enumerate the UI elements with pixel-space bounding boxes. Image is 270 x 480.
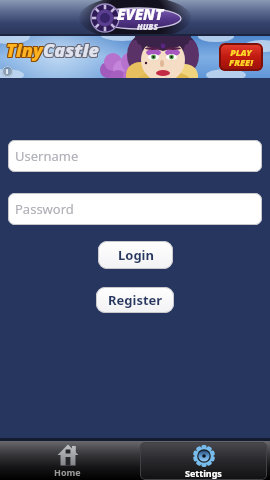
- button[interactable]: Login: [98, 241, 173, 269]
- staticText: Register: [108, 291, 163, 309]
- staticText: Tiny: [7, 38, 44, 63]
- staticText: Settings: [185, 467, 222, 479]
- staticText: Castle: [43, 39, 99, 64]
- staticText: Tiny: [5, 39, 42, 64]
- staticText: EVENT: [117, 4, 164, 24]
- staticText: Tiny: [6, 39, 43, 64]
- staticText: Castle: [44, 38, 100, 63]
- button[interactable]: Username: [8, 140, 262, 172]
- button[interactable]: Home: [0, 441, 135, 480]
- button[interactable]: Password: [8, 193, 262, 225]
- staticText: Castle: [42, 37, 98, 62]
- staticText: Username: [15, 147, 79, 165]
- staticText: Tiny: [5, 37, 42, 62]
- staticText: Password: [15, 200, 74, 218]
- staticText: Tiny: [7, 37, 44, 62]
- button[interactable]: Settings: [140, 442, 267, 480]
- staticText: Login: [118, 246, 154, 264]
- button[interactable]: Register: [96, 287, 174, 313]
- staticText: Castle: [44, 39, 100, 64]
- staticText: Castle: [43, 38, 99, 63]
- staticText: Castle: [43, 37, 99, 62]
- staticText: Tiny: [7, 39, 44, 64]
- staticText: Castle: [44, 37, 100, 62]
- staticText: PLAY FREE!: [229, 46, 253, 68]
- staticText: Castle: [42, 38, 98, 63]
- button[interactable]: Tiny: [0, 36, 270, 78]
- staticText: Tiny: [6, 38, 43, 63]
- button[interactable]: PLAY FREE!: [219, 43, 263, 71]
- staticText: HUBS: [137, 21, 158, 32]
- staticText: Home: [54, 466, 81, 478]
- staticText: Tiny: [6, 37, 43, 62]
- staticText: Castle: [42, 39, 98, 64]
- staticText: Tiny: [5, 38, 42, 63]
- staticText: i: [6, 67, 9, 77]
